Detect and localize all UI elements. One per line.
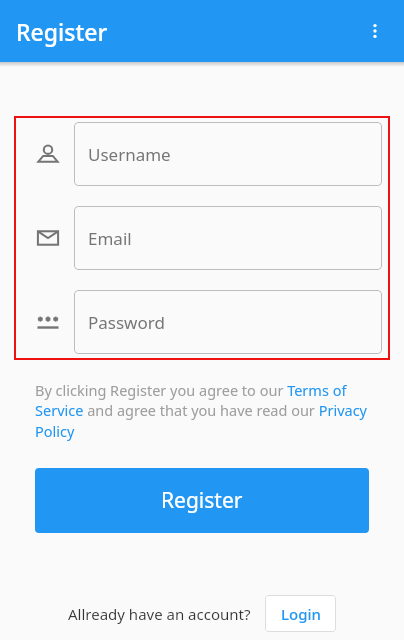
button[interactable]: Password (74, 290, 382, 354)
staticText: Password (88, 311, 165, 334)
button[interactable]: By clicking Register you agree to our Te… (35, 380, 369, 442)
button[interactable]: Email (74, 206, 382, 270)
staticText: Username (88, 143, 171, 166)
staticText: Allready have an account? (68, 604, 251, 624)
staticText: Register (161, 486, 243, 515)
staticText: Login (281, 604, 321, 624)
button[interactable]: Register (35, 468, 369, 533)
button[interactable]: Login (265, 595, 336, 632)
button[interactable]: Username (74, 122, 382, 186)
staticText: Register (16, 16, 108, 47)
button[interactable]: More options (356, 12, 394, 50)
staticText: By clicking Register you agree to our Te… (35, 380, 369, 442)
staticText: Email (88, 227, 132, 250)
